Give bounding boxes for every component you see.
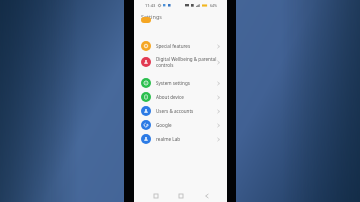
staticText: 11:43: [145, 3, 156, 8]
button[interactable]: Home: [176, 191, 185, 200]
button[interactable]: Digital Wellbeing & parental controls: [134, 53, 227, 71]
button[interactable]: Special features: [134, 39, 227, 53]
button[interactable]: [134, 22, 227, 28]
staticText: Digital Wellbeing & parental controls: [156, 56, 217, 68]
staticText: 64%: [210, 3, 217, 8]
button[interactable]: realme Lab: [134, 132, 227, 146]
button[interactable]: System settings: [134, 76, 227, 90]
button[interactable]: Users & accounts: [134, 104, 227, 118]
staticText: System settings: [156, 80, 217, 86]
staticText: realme Lab: [156, 136, 217, 142]
button[interactable]: Google: [134, 118, 227, 132]
button[interactable]: About device: [134, 90, 227, 104]
staticText: Google: [156, 122, 217, 128]
staticText: Users & accounts: [156, 108, 217, 114]
button[interactable]: Recent apps: [151, 191, 160, 200]
staticText: Settings: [141, 13, 162, 20]
staticText: Special features: [156, 43, 217, 49]
button[interactable]: Back: [202, 191, 211, 200]
staticText: About device: [156, 94, 217, 100]
